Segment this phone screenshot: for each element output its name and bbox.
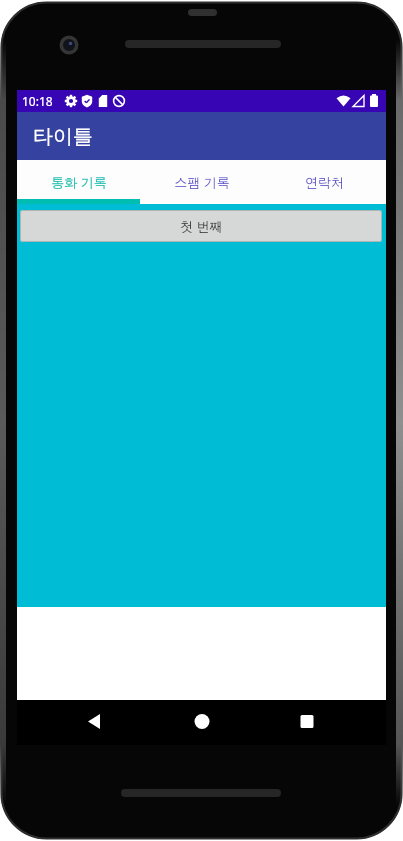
staticText: 첫 번째 bbox=[180, 217, 223, 235]
staticText: 10:18 bbox=[22, 93, 53, 109]
staticText: 타이틀 bbox=[33, 124, 93, 149]
staticText: 연락처 bbox=[305, 174, 344, 190]
button[interactable]: 통화 기록 bbox=[17, 160, 140, 204]
button[interactable]: 첫 번째 bbox=[20, 210, 382, 242]
staticText: 통화 기록 bbox=[51, 173, 107, 191]
button[interactable]: 스팸 기록 bbox=[140, 160, 263, 204]
button[interactable]: 연락처 bbox=[263, 160, 386, 204]
staticText: 스팸 기록 bbox=[174, 173, 230, 191]
